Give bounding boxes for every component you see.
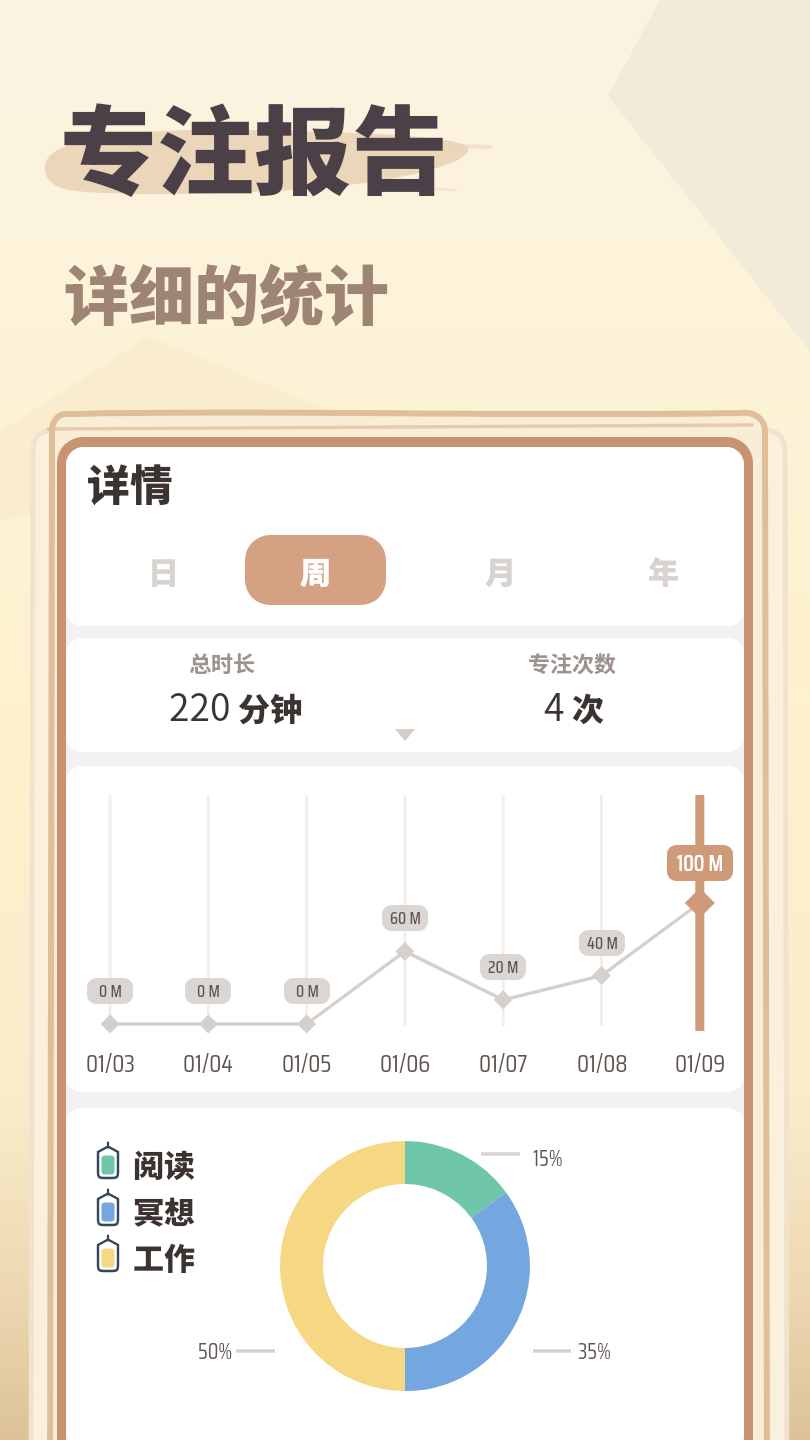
button[interactable]: 总时长 (66, 638, 405, 752)
button[interactable]: 月 (445, 535, 555, 605)
button[interactable]: 年 (608, 535, 718, 605)
staticText: 01/06 (380, 1044, 431, 1083)
staticText: 01/07 (479, 1044, 528, 1083)
staticText: 专注次数 (528, 646, 617, 678)
staticText: 01/05 (282, 1044, 332, 1083)
staticText: 周 (300, 548, 331, 593)
button[interactable]: 冥想 (96, 1188, 195, 1228)
staticText: 01/08 (577, 1044, 628, 1083)
staticText: 01/09 (675, 1044, 726, 1083)
staticText: 15% (533, 1141, 563, 1176)
staticText: 40 M (587, 930, 618, 956)
staticText: 100 M (677, 846, 724, 881)
other: Expand details (66, 638, 744, 752)
button[interactable]: 工作 (96, 1234, 195, 1274)
staticText: 01/04 (183, 1044, 234, 1083)
button[interactable]: 阅读 (96, 1141, 195, 1181)
staticText: 日 (148, 548, 179, 593)
button[interactable]: 专注次数 (405, 638, 744, 752)
staticText: 分钟 (238, 684, 303, 730)
staticText: 次 (572, 684, 605, 730)
staticText: 220 (169, 678, 231, 732)
staticText: 0 M (197, 978, 220, 1004)
staticText: 专注报告 (60, 74, 448, 214)
button[interactable]: 日 (108, 535, 218, 605)
staticText: 35% (578, 1334, 611, 1369)
staticText: 详细的统计 (64, 245, 390, 339)
staticText: 冥想 (133, 1188, 195, 1228)
staticText: 详情 (87, 451, 173, 513)
staticText: 阅读 (133, 1141, 195, 1181)
button[interactable]: 周 (245, 535, 386, 605)
staticText: 月 (485, 548, 516, 593)
staticText: 总时长 (189, 646, 256, 678)
staticText: 20 M (488, 954, 519, 980)
staticText: 4 (544, 678, 565, 732)
staticText: 年 (648, 548, 679, 593)
staticText: 50% (198, 1334, 233, 1369)
staticText: 工作 (133, 1234, 195, 1274)
staticText: 0 M (296, 978, 319, 1004)
staticText: 0 M (99, 978, 122, 1004)
staticText: 01/03 (86, 1044, 135, 1083)
staticText: 60 M (390, 905, 421, 931)
